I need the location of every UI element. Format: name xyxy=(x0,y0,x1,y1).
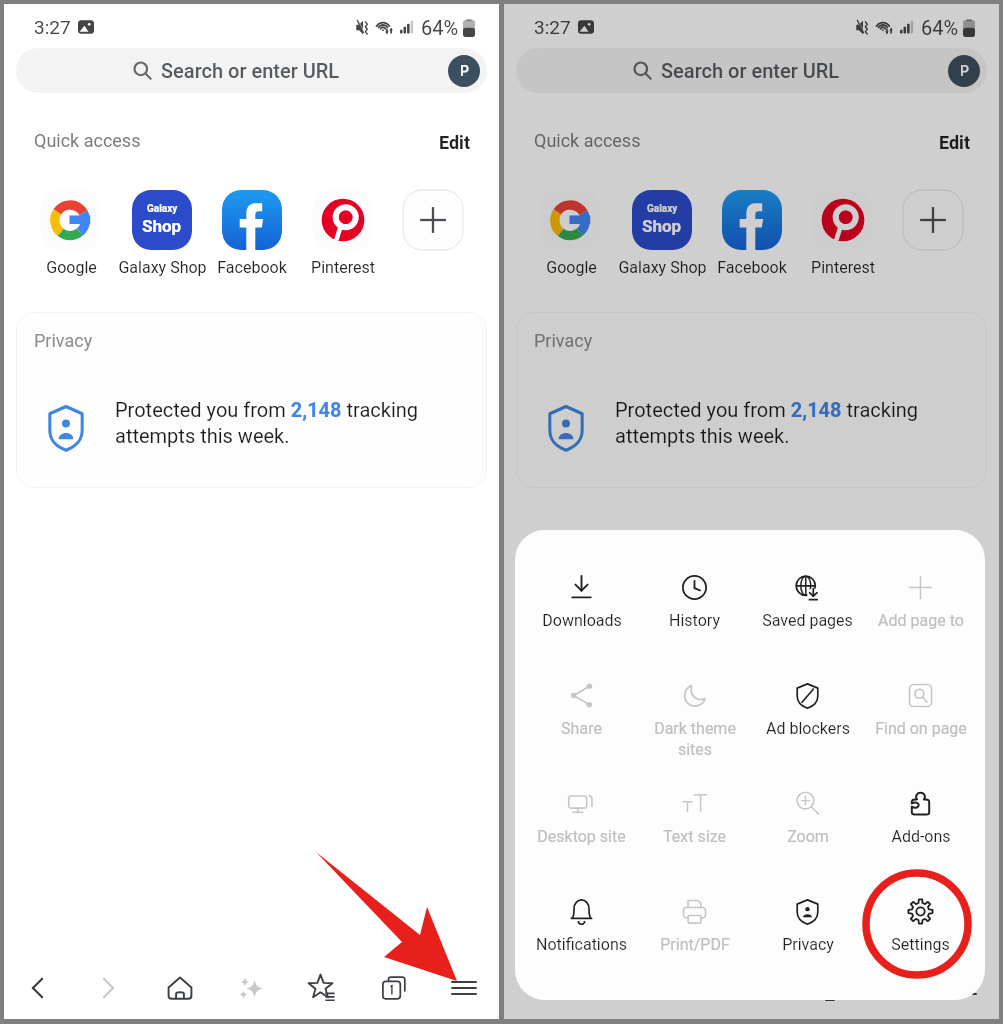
button[interactable]: Assistant xyxy=(225,962,277,1014)
staticText: Quick access xyxy=(34,130,141,151)
button[interactable]: Edit xyxy=(928,125,980,159)
staticText: P xyxy=(460,63,469,79)
staticText: Pinterest xyxy=(811,258,875,277)
button[interactable]: Profile xyxy=(948,55,980,87)
button[interactable]: Search or enter URL xyxy=(16,48,487,93)
button[interactable]: Text size xyxy=(638,776,751,884)
staticText: Share xyxy=(561,719,602,738)
button[interactable]: Notifications xyxy=(525,884,638,992)
button[interactable]: Google xyxy=(516,190,626,277)
button[interactable]: Facebook xyxy=(697,190,807,277)
button[interactable]: Bookmarks xyxy=(296,962,348,1014)
button[interactable]: Galaxy xyxy=(107,190,217,277)
staticText: Text size xyxy=(663,827,726,846)
button[interactable]: Ad blockers xyxy=(751,668,864,776)
button[interactable]: Home xyxy=(154,962,206,1014)
staticText: P xyxy=(960,63,969,79)
staticText: Privacy xyxy=(34,330,93,351)
button[interactable]: Dark theme sites xyxy=(638,668,751,776)
staticText: Print/PDF xyxy=(660,935,730,954)
staticText: Facebook xyxy=(217,258,287,277)
button[interactable]: History xyxy=(638,560,751,668)
button[interactable]: Menu xyxy=(438,962,490,1014)
button[interactable]: Add page to xyxy=(864,560,977,668)
staticText: Privacy xyxy=(534,330,593,351)
button[interactable]: Forward xyxy=(582,962,634,1014)
button[interactable]: Galaxy xyxy=(607,190,717,277)
staticText: Privacy xyxy=(782,935,834,954)
button[interactable]: Assistant xyxy=(725,962,777,1014)
staticText: 3:27 xyxy=(534,16,571,38)
staticText: History xyxy=(669,611,720,630)
button[interactable]: Downloads xyxy=(525,560,638,668)
button[interactable]: Add-ons xyxy=(864,776,977,884)
staticText: 64% xyxy=(421,16,459,39)
staticText: Google xyxy=(546,258,597,277)
staticText: Pinterest xyxy=(311,258,375,277)
button[interactable]: Desktop site xyxy=(525,776,638,884)
button[interactable]: Back xyxy=(12,962,64,1014)
button[interactable]: Profile xyxy=(448,55,480,87)
button[interactable]: Zoom xyxy=(751,776,864,884)
staticText: Galaxy Shop xyxy=(118,258,207,277)
button[interactable]: Find on page xyxy=(864,668,977,776)
staticText: Google xyxy=(46,258,97,277)
staticText: Protected you from 2,148 tracking attemp… xyxy=(615,398,935,448)
button[interactable]: Settings xyxy=(864,884,977,992)
button[interactable]: Edit xyxy=(428,125,480,159)
button[interactable]: Privacy xyxy=(751,884,864,992)
staticText: Edit xyxy=(439,132,470,153)
staticText: Settings xyxy=(891,935,950,954)
staticText: Galaxy Shop xyxy=(618,258,707,277)
button[interactable]: Home xyxy=(654,962,706,1014)
staticText: Zoom xyxy=(787,827,829,846)
staticText: Galaxy xyxy=(147,203,178,215)
staticText: Edit xyxy=(939,132,970,153)
button[interactable]: Pinterest xyxy=(788,190,898,277)
button[interactable]: Print/PDF xyxy=(638,884,751,992)
button[interactable]: Tabs xyxy=(868,962,920,1014)
button[interactable]: Menu xyxy=(938,962,990,1014)
staticText: Desktop site xyxy=(537,827,626,846)
staticText: Downloads xyxy=(542,611,622,630)
button[interactable] xyxy=(378,190,488,277)
staticText: Galaxy xyxy=(647,203,678,215)
staticText: Shop xyxy=(642,216,682,236)
staticText: Add page to xyxy=(878,611,964,630)
button[interactable]: Back xyxy=(512,962,564,1014)
staticText: 3:27 xyxy=(34,16,71,38)
button[interactable]: Privacy xyxy=(16,312,487,488)
button[interactable]: Privacy xyxy=(516,312,987,488)
button[interactable]: Facebook xyxy=(197,190,307,277)
staticText: Saved pages xyxy=(762,611,853,630)
staticText: Search or enter URL xyxy=(661,59,840,82)
staticText: Shop xyxy=(142,216,182,236)
staticText: Dark theme sites xyxy=(654,719,736,759)
button[interactable]: Saved pages xyxy=(751,560,864,668)
button[interactable]: Google xyxy=(16,190,126,277)
staticText: Search or enter URL xyxy=(161,59,340,82)
staticText: Quick access xyxy=(534,130,641,151)
button[interactable]: Bookmarks xyxy=(796,962,848,1014)
button[interactable]: Share xyxy=(525,668,638,776)
button[interactable]: Search or enter URL xyxy=(516,48,987,93)
button[interactable] xyxy=(878,190,988,277)
staticText: Notifications xyxy=(536,935,627,954)
staticText: Facebook xyxy=(717,258,787,277)
staticText: Add-ons xyxy=(891,827,951,846)
button[interactable]: Forward xyxy=(82,962,134,1014)
staticText: Protected you from 2,148 tracking attemp… xyxy=(115,398,435,448)
button[interactable]: Pinterest xyxy=(288,190,398,277)
staticText: 64% xyxy=(921,16,959,39)
staticText: Find on page xyxy=(875,719,967,738)
button[interactable]: Tabs xyxy=(368,962,420,1014)
staticText: Ad blockers xyxy=(766,719,850,738)
